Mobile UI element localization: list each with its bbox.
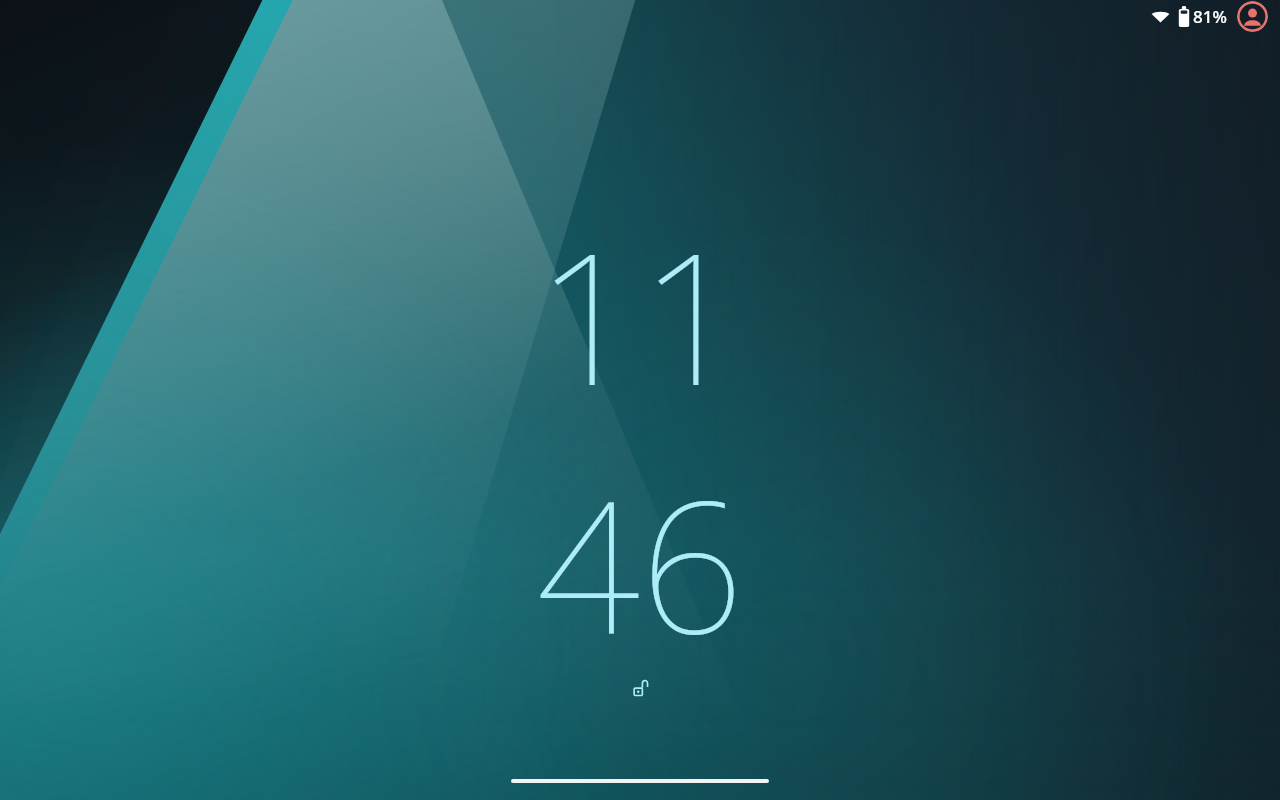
button[interactable]: Unlock	[623, 671, 657, 705]
staticText: 46	[536, 438, 744, 686]
button[interactable]: 11	[0, 190, 1280, 686]
staticText: 11	[536, 190, 744, 438]
button[interactable]: Switch user	[1237, 1, 1268, 32]
button[interactable]: Home	[511, 779, 769, 783]
staticText: 81%	[1193, 5, 1227, 28]
